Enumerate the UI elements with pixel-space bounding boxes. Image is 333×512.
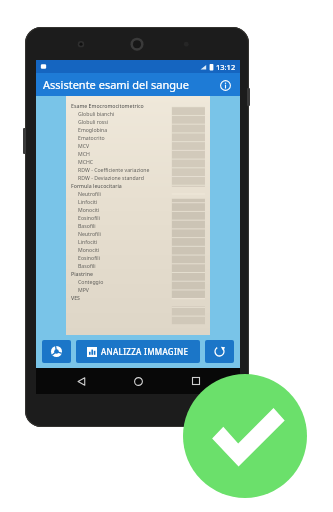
staticText: Globuli bianchi bbox=[78, 110, 115, 118]
staticText: Esame Emocromocitometrico bbox=[71, 102, 144, 110]
staticText: Piastrine bbox=[71, 270, 93, 278]
button[interactable]: ANALIZZA IMMAGINE bbox=[76, 340, 200, 363]
button[interactable]: Informazioni bbox=[217, 77, 233, 93]
staticText: MCHC bbox=[78, 158, 94, 166]
staticText: Conteggio bbox=[78, 278, 104, 286]
staticText: 13:12 bbox=[216, 62, 236, 72]
staticText: Monociti bbox=[78, 206, 100, 214]
staticText: Linfociti bbox=[78, 198, 98, 206]
staticText: VES bbox=[71, 294, 80, 302]
staticText: Emoglobina bbox=[78, 126, 108, 134]
staticText: Basofili bbox=[78, 262, 96, 270]
other: Completato bbox=[183, 374, 307, 498]
staticText: Basofili bbox=[78, 222, 96, 230]
staticText: MPV bbox=[78, 286, 89, 294]
staticText: Globuli rossi bbox=[78, 118, 109, 126]
staticText: ANALIZZA IMMAGINE bbox=[101, 346, 189, 357]
staticText: Monociti bbox=[78, 246, 100, 254]
staticText: Ematocrito bbox=[78, 134, 105, 142]
staticText: Linfociti bbox=[78, 238, 98, 246]
staticText: Eosinofili bbox=[78, 254, 100, 262]
button[interactable]: Indietro bbox=[68, 368, 94, 394]
staticText: MCV bbox=[78, 142, 90, 150]
staticText: Neutrofili bbox=[78, 230, 101, 238]
button[interactable]: Home bbox=[125, 368, 151, 394]
staticText: Eosinofili bbox=[78, 214, 100, 222]
button[interactable]: Recenti bbox=[183, 368, 209, 394]
staticText: MCH bbox=[78, 150, 90, 158]
staticText: Assistente esami del sangue bbox=[43, 77, 217, 92]
staticText: Formula leucocitaria bbox=[71, 182, 122, 190]
staticText: RDW - Deviazione standard bbox=[78, 174, 144, 182]
staticText: RDW - Coefficiente variazione bbox=[78, 166, 150, 174]
button[interactable]: Scatta foto bbox=[42, 340, 71, 363]
staticText: Neutrofili bbox=[78, 190, 101, 198]
button[interactable]: Ricomincia bbox=[205, 340, 234, 363]
